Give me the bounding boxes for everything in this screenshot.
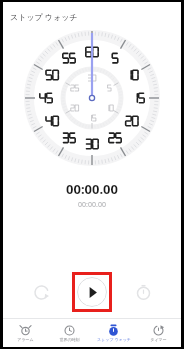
staticText: ストップ ウォッチ [97,337,131,342]
button[interactable]: 世界の時刻 [47,319,91,347]
staticText: アラーム [17,337,34,342]
button[interactable]: アラーム [3,319,47,347]
staticText: 世界の時刻 [59,337,80,342]
staticText: 00:00.00 [66,180,118,198]
staticText: 00:00.00 [78,200,106,210]
button[interactable]: Reset [29,280,53,304]
button[interactable]: Lap [131,280,155,304]
button[interactable]: ストップ ウォッチ [91,319,136,347]
staticText: ストップ ウォッチ [10,11,78,22]
staticText: タイマー [150,337,167,342]
button[interactable]: Start [77,277,107,307]
button[interactable]: タイマー [136,319,181,347]
